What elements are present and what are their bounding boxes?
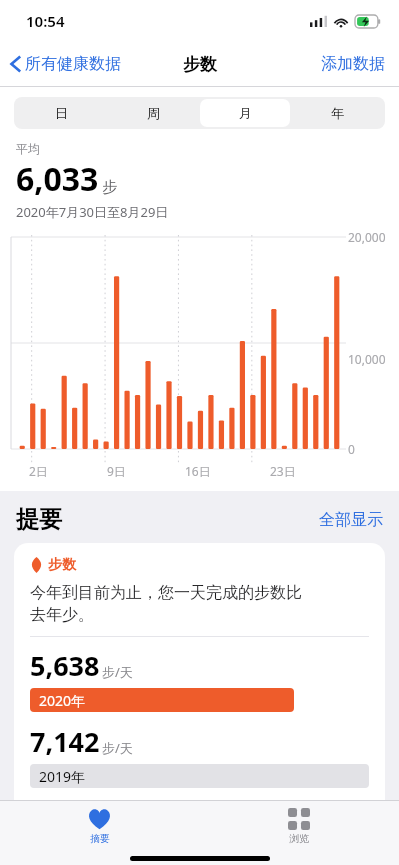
staticText: 10:54 [26,11,65,31]
button[interactable]: 月 [200,99,290,127]
staticText: 5,638 [30,647,100,684]
staticText: 月 [239,105,252,121]
staticText: 2019年 [39,767,86,786]
staticText: 2020年7月30日至8月29日 [16,203,169,221]
staticText: 步/天 [102,663,133,681]
button[interactable]: 所有健康数据 [10,54,121,74]
staticText: 2日 [29,463,48,479]
staticText: 9日 [107,463,126,479]
button[interactable]: 添加数据 [321,54,385,74]
button[interactable]: 全部显示 [319,510,383,530]
staticText: 10,000 [348,351,386,367]
button[interactable]: 摘要 [0,801,199,851]
staticText: 摘要 [90,832,110,845]
staticText: 年 [331,105,344,121]
staticText: 所有健康数据 [25,54,121,74]
staticText: 步 [102,178,117,197]
button[interactable]: 浏览 [199,801,399,851]
staticText: 今年到目前为止，您一天完成的步数比 去年少。 [30,583,302,625]
staticText: 6,033 [16,157,99,201]
staticText: 步数 [183,54,217,75]
staticText: 步数 [48,556,76,574]
button[interactable]: 步数 [14,543,385,800]
staticText: 7,142 [30,723,100,760]
button[interactable]: 年 [292,99,382,127]
staticText: 20,000 [348,229,386,245]
staticText: 0 [348,441,355,457]
button[interactable]: 周 [108,99,198,127]
staticText: 2020年 [39,691,86,710]
staticText: 日 [55,105,68,121]
staticText: 16日 [185,463,211,479]
staticText: 浏览 [289,832,309,845]
staticText: 步/天 [102,739,133,757]
staticText: 平均 [16,141,40,156]
staticText: 23日 [270,463,296,479]
staticText: 周 [147,105,160,121]
staticText: 提要 [16,505,62,534]
button[interactable]: 日 [17,99,106,127]
